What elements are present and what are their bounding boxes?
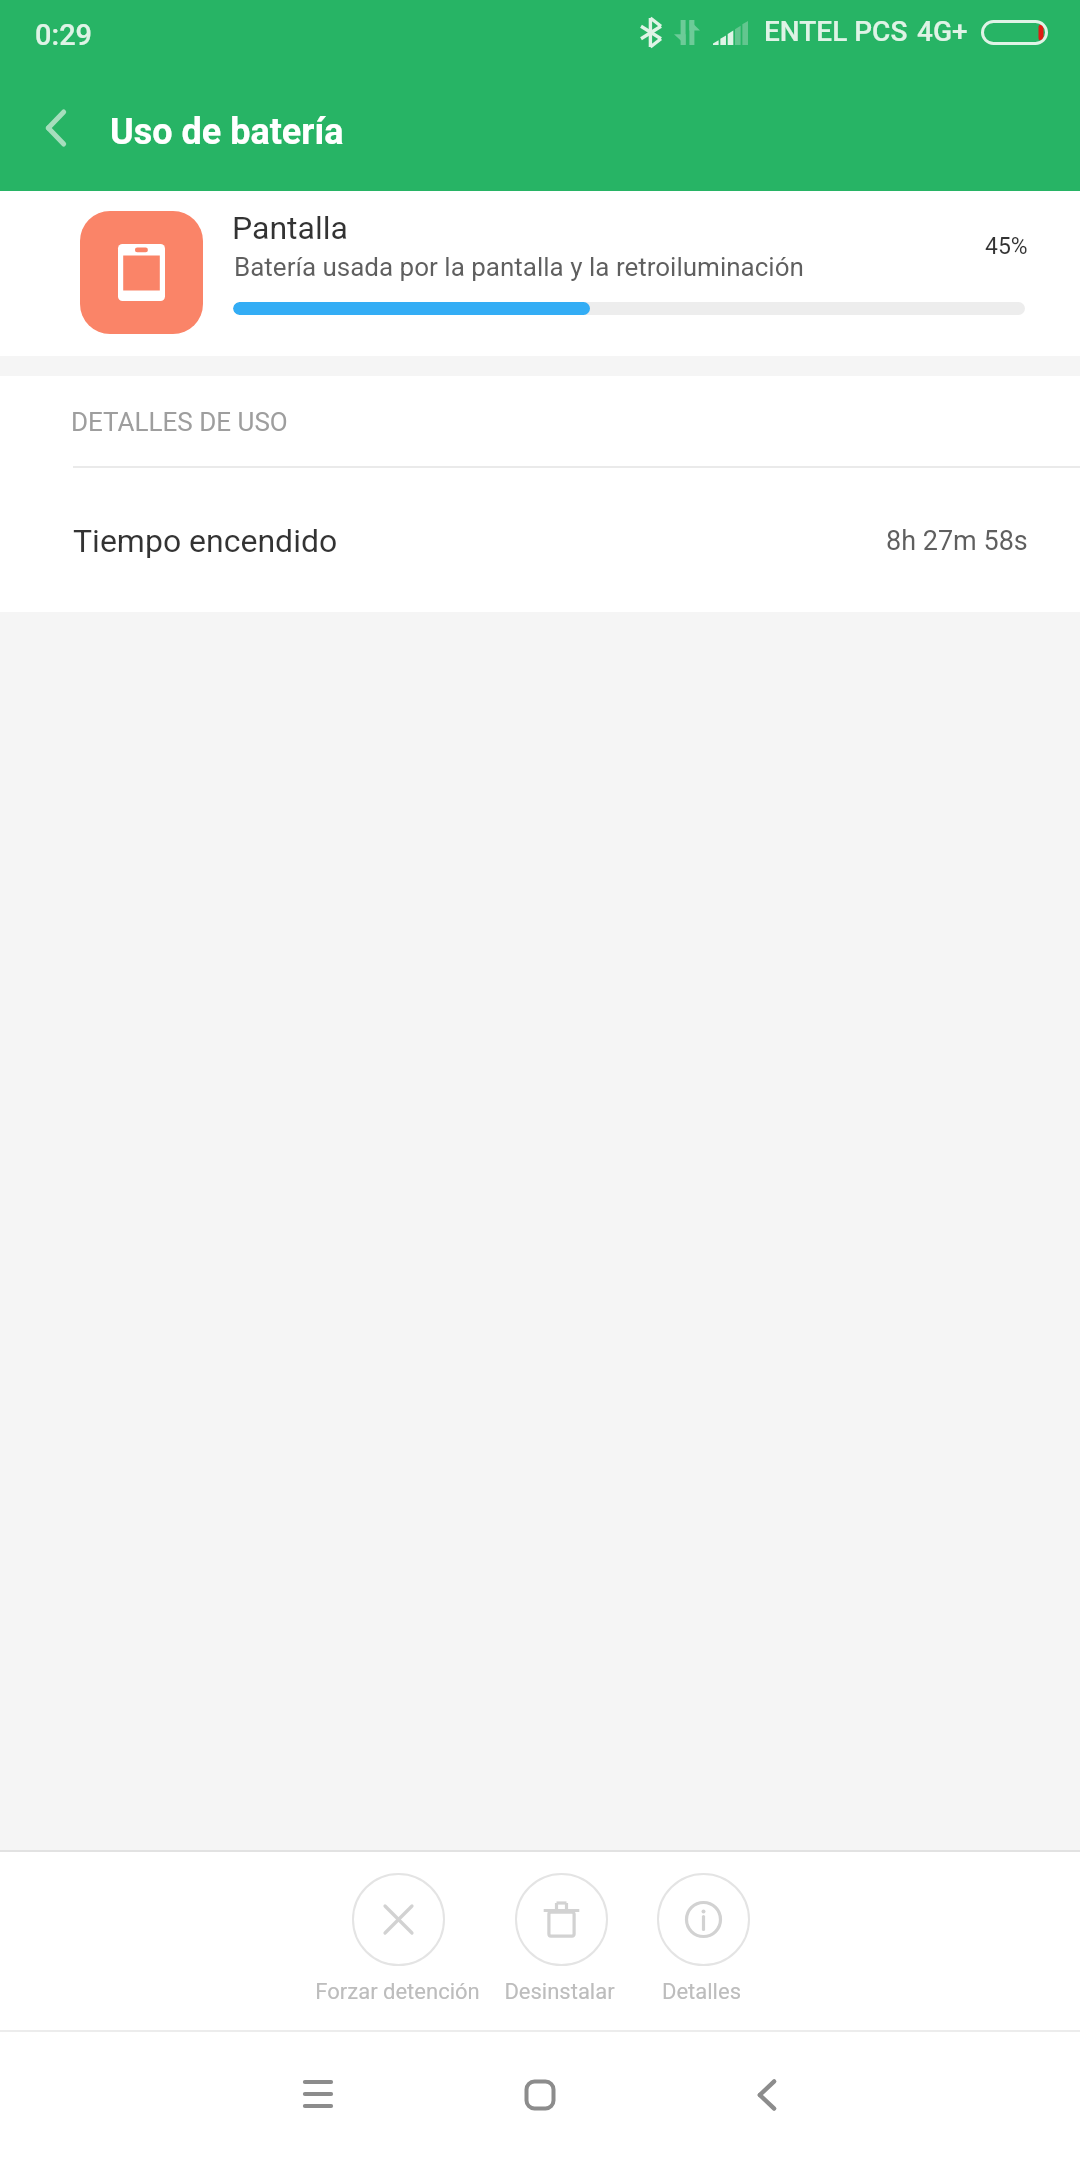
staticText: Pantalla	[232, 209, 348, 247]
staticText: Tiempo encendido	[73, 522, 338, 560]
button[interactable]: Back	[0, 74, 110, 184]
staticText: 4G+	[917, 15, 968, 48]
staticText: DETALLES DE USO	[71, 407, 288, 437]
button[interactable]: Recent apps	[256, 2044, 380, 2144]
staticText: Forzar detención	[315, 1979, 480, 2005]
button[interactable]: Pantalla	[0, 191, 1080, 356]
button[interactable]: Forzar detención	[287, 1873, 507, 1966]
button[interactable]: Tiempo encendido	[0, 468, 1080, 612]
staticText: Batería usada por la pantalla y la retro…	[234, 252, 804, 282]
staticText: ENTEL PCS	[764, 15, 908, 48]
staticText: Desinstalar	[504, 1979, 615, 2005]
button[interactable]: Back	[705, 2045, 829, 2145]
staticText: 0:29	[35, 18, 93, 52]
button[interactable]: Desinstalar	[449, 1873, 669, 1966]
staticText: 45%	[985, 233, 1028, 260]
staticText: Detalles	[662, 1979, 741, 2005]
staticText: 8h 27m 58s	[886, 525, 1028, 557]
button[interactable]: Detalles	[591, 1873, 811, 1966]
button[interactable]: Home	[478, 2045, 602, 2145]
staticText: Uso de batería	[110, 111, 344, 153]
